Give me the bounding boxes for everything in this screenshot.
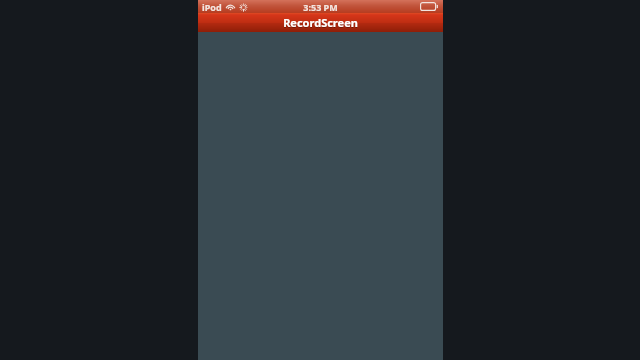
staticText: 3:53 PM [303,1,338,13]
staticText: RecordScreen [283,16,358,31]
staticText: RecordScreen [283,15,358,30]
staticText: iPod [202,1,222,13]
button[interactable]: RecordScreen [198,13,443,32]
